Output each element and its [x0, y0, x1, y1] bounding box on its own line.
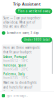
staticText: and hotels for any of — [3, 86, 32, 89]
staticText: Type a message… — [6, 94, 28, 97]
staticText: Lisbon, Portugal — [3, 55, 27, 59]
staticText: from $735 · 19°C — [3, 76, 28, 80]
staticText: these? — [3, 90, 12, 94]
staticText: Here are three warm spots — [3, 46, 39, 49]
staticText: Under $800 total — [24, 38, 50, 42]
staticText: Trip Assistant — [13, 1, 41, 7]
staticText: Plan a weekend away — [18, 9, 50, 13]
staticText: from $548 · 20°C — [3, 68, 28, 71]
staticText: Sure — I can put together — [3, 16, 40, 20]
staticText: that fit your budget: — [3, 51, 32, 54]
staticText: Valencia, Spain — [3, 64, 26, 67]
button[interactable]: Type a message… — [0, 91, 54, 100]
button[interactable]: Plan a weekend away — [15, 9, 52, 14]
staticText: Palermo, Italy — [3, 72, 24, 76]
staticText: trip are you after? — [3, 25, 27, 28]
staticText: a few ideas. What sort of — [3, 21, 35, 24]
staticText: Somewhere warm, 3 days — [7, 31, 39, 35]
staticText: Want me to check flights — [3, 81, 36, 84]
staticText: from $612 · 18°C — [3, 59, 28, 63]
button[interactable]: Under $800 total — [21, 37, 52, 42]
